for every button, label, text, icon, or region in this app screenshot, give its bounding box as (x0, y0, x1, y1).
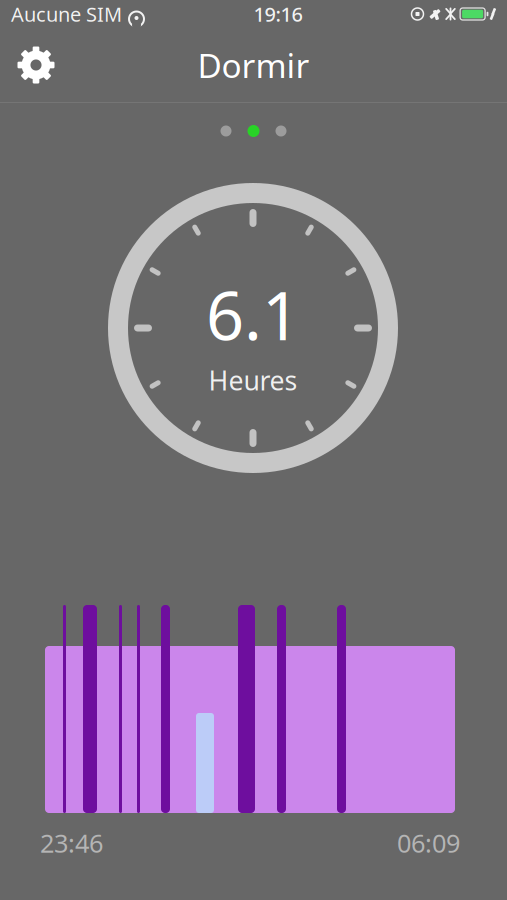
staticText: Aucune SIM (11, 1, 122, 27)
staticText: 6.1 (206, 270, 300, 358)
staticText: Heures (208, 363, 297, 398)
staticText: 23:46 (40, 826, 103, 860)
staticText: 06:09 (397, 826, 460, 860)
staticText: 19:16 (253, 1, 302, 27)
button[interactable]: Settings (8, 37, 64, 93)
staticText: Dormir (197, 43, 309, 87)
